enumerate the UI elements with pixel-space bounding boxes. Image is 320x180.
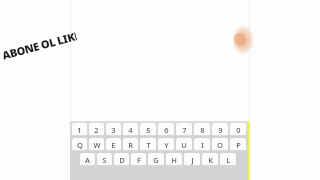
button[interactable]: 5 bbox=[140, 123, 156, 136]
staticText: K bbox=[208, 155, 213, 165]
staticText: 4 bbox=[128, 125, 133, 135]
staticText: Q bbox=[77, 140, 83, 150]
button[interactable]: S bbox=[97, 153, 112, 166]
button[interactable]: A bbox=[80, 153, 95, 166]
staticText: H bbox=[171, 155, 177, 165]
button[interactable]: 4 bbox=[123, 123, 138, 136]
staticText: U bbox=[181, 140, 187, 150]
button[interactable]: Y bbox=[158, 138, 174, 151]
staticText: T bbox=[146, 140, 151, 150]
button[interactable]: 8 bbox=[194, 123, 210, 136]
button[interactable]: G bbox=[148, 153, 164, 166]
staticText: 8 bbox=[200, 125, 205, 135]
staticText: L bbox=[226, 155, 231, 165]
staticText: 7 bbox=[182, 125, 187, 135]
staticText: 1 bbox=[77, 125, 82, 135]
button[interactable]: K bbox=[202, 153, 218, 166]
staticText: 6 bbox=[164, 125, 169, 135]
button[interactable]: 0 bbox=[230, 123, 246, 136]
staticText: P bbox=[236, 140, 241, 150]
button[interactable]: E bbox=[106, 138, 121, 151]
staticText: 2 bbox=[94, 125, 99, 135]
button[interactable]: H bbox=[166, 153, 182, 166]
button[interactable]: 1 bbox=[72, 123, 87, 136]
button[interactable]: ABONE OL LIKE AT bbox=[0, 21, 80, 69]
staticText: D bbox=[119, 155, 125, 165]
button[interactable]: O bbox=[212, 138, 228, 151]
button[interactable]: 9 bbox=[212, 123, 228, 136]
staticText: Y bbox=[164, 140, 169, 150]
button[interactable]: P bbox=[230, 138, 246, 151]
button[interactable]: 3 bbox=[106, 123, 121, 136]
button[interactable]: D bbox=[114, 153, 129, 166]
staticText: S bbox=[102, 155, 107, 165]
staticText: R bbox=[128, 140, 133, 150]
button[interactable]: W bbox=[89, 138, 104, 151]
staticText: 0 bbox=[236, 125, 241, 135]
staticText: I bbox=[201, 140, 204, 150]
button[interactable]: T bbox=[140, 138, 156, 151]
staticText: E bbox=[111, 140, 116, 150]
staticText: W bbox=[93, 140, 101, 150]
button[interactable]: Q bbox=[72, 138, 87, 151]
staticText: ABONE OL LIKE AT bbox=[0, 28, 78, 63]
staticText: 9 bbox=[218, 125, 223, 135]
staticText: F bbox=[137, 155, 141, 165]
button[interactable]: R bbox=[123, 138, 138, 151]
staticText: O bbox=[217, 140, 223, 150]
button[interactable]: I bbox=[194, 138, 210, 151]
staticText: G bbox=[153, 155, 159, 165]
staticText: 3 bbox=[111, 125, 116, 135]
button[interactable]: L bbox=[220, 153, 236, 166]
staticText: A bbox=[85, 155, 90, 165]
button[interactable]: 2 bbox=[89, 123, 104, 136]
button[interactable]: 7 bbox=[176, 123, 192, 136]
button[interactable]: F bbox=[131, 153, 146, 166]
button[interactable]: U bbox=[176, 138, 192, 151]
button[interactable]: 6 bbox=[158, 123, 174, 136]
staticText: J bbox=[191, 155, 194, 165]
button[interactable]: J bbox=[184, 153, 200, 166]
staticText: 5 bbox=[146, 125, 151, 135]
